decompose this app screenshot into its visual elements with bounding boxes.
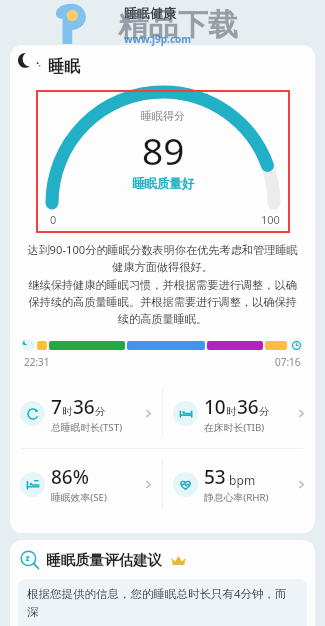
staticText: 89: [142, 125, 185, 175]
staticText: 总睡眠时长(TST): [51, 421, 123, 434]
staticText: 睡眠质量好: [132, 176, 195, 192]
button[interactable]: 睡眠: [10, 55, 315, 79]
staticText: 精品下载: [118, 6, 238, 44]
staticText: 分: [259, 405, 270, 418]
staticText: 时: [62, 405, 73, 418]
button[interactable]: 睡眠质量评估建议: [10, 550, 315, 570]
staticText: 10: [204, 394, 226, 420]
staticText: 7: [51, 394, 62, 420]
staticText: 100: [261, 212, 280, 227]
staticText: 分: [95, 405, 106, 418]
staticText: 07:16: [275, 355, 301, 369]
staticText: 0: [50, 212, 57, 227]
staticText: www.j9p.com: [124, 32, 192, 46]
button[interactable]: 53: [163, 449, 315, 519]
staticText: 时: [226, 405, 237, 418]
staticText: 86%: [51, 464, 89, 490]
button[interactable]: 10: [163, 379, 315, 448]
button[interactable]: 7: [10, 379, 162, 448]
staticText: 睡眠质量评估建议: [46, 551, 162, 569]
staticText: 睡眠效率(SE): [51, 491, 107, 504]
staticText: 达到90-100分的睡眠分数表明你在优先考虑和管理睡眠健康方面做得很好。: [23, 242, 302, 274]
staticText: 36: [237, 394, 259, 420]
staticText: 53: [204, 464, 226, 490]
button[interactable]: 86%: [10, 449, 162, 519]
staticText: 36: [73, 394, 95, 420]
staticText: 睡眠得分: [141, 109, 185, 123]
staticText: 静息心率(RHR): [204, 491, 269, 504]
staticText: 在床时长(TIB): [204, 421, 265, 434]
staticText: 22:31: [24, 355, 50, 369]
staticText: 继续保持健康的睡眠习惯，并根据需要进行调整，以确保持续的高质量睡眠。并根据需要进…: [23, 278, 302, 326]
staticText: 睡眠: [48, 57, 80, 77]
staticText: 根据您提供的信息，您的睡眠总时长只有4分钟，而深 睡眠总时长只有4分钟。而深: [27, 586, 298, 619]
staticText: bpm: [226, 472, 256, 488]
staticText: 睡眠健康: [124, 5, 176, 21]
